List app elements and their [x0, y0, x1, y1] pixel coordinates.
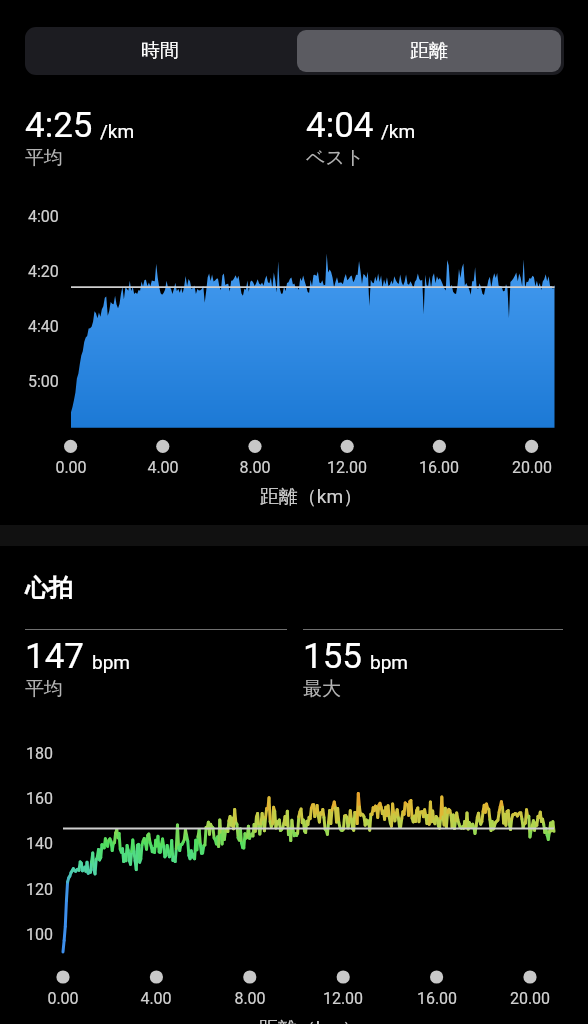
staticText: 8.00: [210, 989, 290, 1008]
staticText: bpm: [370, 651, 408, 673]
button[interactable]: 時間: [25, 27, 294, 75]
staticText: 147: [25, 636, 85, 677]
staticText: ベスト: [306, 146, 365, 170]
staticText: 20.00: [492, 458, 572, 477]
staticText: 160: [26, 789, 53, 808]
staticText: 心拍: [25, 573, 73, 603]
staticText: 100: [26, 925, 53, 944]
staticText: 5:00: [28, 372, 59, 391]
staticText: 距離: [410, 39, 448, 63]
staticText: 平均: [25, 677, 63, 701]
staticText: 0.00: [31, 458, 111, 477]
staticText: 16.00: [397, 989, 477, 1008]
staticText: 4:40: [28, 317, 59, 336]
staticText: 180: [26, 744, 53, 763]
staticText: 4.00: [116, 989, 196, 1008]
staticText: /km: [381, 120, 416, 142]
staticText: 8.00: [215, 458, 295, 477]
staticText: 距離（km）: [111, 485, 511, 509]
staticText: 20.00: [490, 989, 570, 1008]
staticText: /km: [100, 120, 135, 142]
staticText: 120: [26, 880, 53, 899]
staticText: 4:00: [28, 207, 59, 226]
staticText: 距離（km）: [110, 1017, 510, 1024]
staticText: 平均: [25, 146, 63, 170]
staticText: 12.00: [307, 458, 387, 477]
staticText: 155: [303, 636, 363, 677]
staticText: bpm: [92, 651, 130, 673]
staticText: 4:04: [306, 105, 374, 146]
staticText: 最大: [303, 677, 341, 701]
staticText: 4.00: [123, 458, 203, 477]
staticText: 0.00: [23, 989, 103, 1008]
staticText: 12.00: [303, 989, 383, 1008]
staticText: 16.00: [399, 458, 479, 477]
staticText: 4:20: [28, 262, 59, 281]
staticText: 時間: [141, 39, 179, 63]
button[interactable]: 距離: [297, 30, 561, 72]
staticText: 140: [26, 834, 53, 853]
staticText: 4:25: [25, 105, 93, 146]
